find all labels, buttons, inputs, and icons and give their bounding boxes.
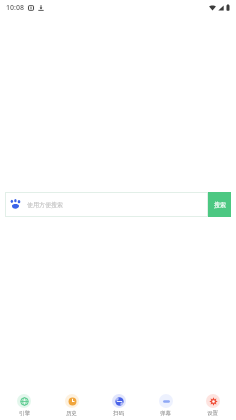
staticText: 设置 bbox=[207, 410, 218, 417]
button[interactable]: 扫码 bbox=[95, 390, 142, 420]
staticText: 10:08 bbox=[6, 3, 24, 13]
staticText: 搜索 bbox=[214, 201, 226, 209]
staticText: 历史 bbox=[66, 410, 77, 417]
staticText: 使用方便搜索 bbox=[27, 201, 63, 209]
staticText: 引擎 bbox=[19, 410, 30, 417]
button[interactable]: 历史 bbox=[48, 390, 95, 420]
staticText: 扫码 bbox=[113, 410, 124, 417]
button[interactable]: 弹幕 bbox=[142, 390, 189, 420]
button[interactable]: 设置 bbox=[189, 390, 236, 420]
button[interactable]: 引擎 bbox=[0, 390, 48, 420]
button[interactable]: 搜索 bbox=[208, 192, 231, 217]
staticText: 弹幕 bbox=[160, 410, 171, 417]
button[interactable]: 使用方便搜索 bbox=[5, 192, 208, 217]
